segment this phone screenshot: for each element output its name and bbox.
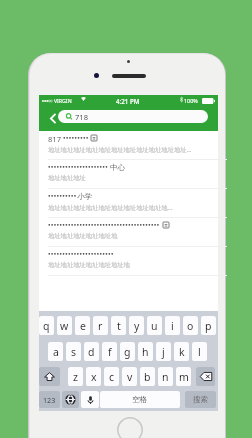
button[interactable]: a xyxy=(48,342,63,361)
staticText: p xyxy=(205,319,212,333)
button[interactable]: f xyxy=(102,342,117,361)
staticText: 地址地址地址地址地址地址地址地址地址地… xyxy=(48,203,173,212)
staticText: l xyxy=(198,345,201,359)
button[interactable]: l xyxy=(192,342,207,361)
button[interactable]: b xyxy=(140,367,155,386)
button[interactable]: z xyxy=(68,367,83,386)
button[interactable]: e xyxy=(75,316,90,335)
button[interactable]: 中心 xyxy=(39,160,218,189)
button[interactable]: c xyxy=(104,367,119,386)
button[interactable]: i xyxy=(165,316,180,335)
staticText: 100% xyxy=(184,97,198,104)
staticText: x xyxy=(91,370,97,384)
staticText: 地址地址地址地址地址地 xyxy=(48,232,118,240)
button[interactable]: v xyxy=(122,367,137,386)
staticText: 地址地址地址地址地址地址地 xyxy=(48,261,130,269)
button[interactable]: j xyxy=(156,342,171,361)
staticText: g xyxy=(124,345,131,359)
staticText: n xyxy=(162,370,169,384)
staticText: 搜索 xyxy=(193,395,209,405)
staticText: VIRGIN xyxy=(54,97,72,104)
staticText: 地址地址地址 xyxy=(48,174,86,182)
button[interactable]: x xyxy=(86,367,101,386)
button[interactable]: 小学 xyxy=(39,189,218,218)
button[interactable]: Search xyxy=(185,391,216,408)
button[interactable]: m xyxy=(176,367,191,386)
button[interactable]: q xyxy=(39,316,54,335)
staticText: 小学 xyxy=(77,192,93,202)
staticText: m xyxy=(179,370,189,384)
staticText: b xyxy=(144,370,151,384)
staticText: e xyxy=(80,319,86,333)
staticText: 123 xyxy=(43,395,56,405)
staticText: o xyxy=(187,319,194,333)
staticText: c xyxy=(109,370,115,384)
staticText: 4:21 PM xyxy=(116,97,140,105)
staticText: q xyxy=(43,319,50,333)
staticText: f xyxy=(108,345,112,359)
button[interactable]: g xyxy=(120,342,135,361)
button[interactable]: d xyxy=(84,342,99,361)
button[interactable]: Dictate xyxy=(81,391,99,408)
button[interactable]: r xyxy=(93,316,108,335)
staticText: t xyxy=(117,319,121,333)
staticText: y xyxy=(134,319,140,333)
button[interactable]: t xyxy=(111,316,126,335)
button[interactable]: k xyxy=(174,342,189,361)
button[interactable]: y xyxy=(129,316,144,335)
button[interactable]: Switch keyboard xyxy=(62,391,79,408)
button[interactable]: u xyxy=(147,316,162,335)
staticText: d xyxy=(88,345,95,359)
staticText: r xyxy=(98,319,103,333)
button[interactable]: Numbers xyxy=(39,391,60,408)
staticText: z xyxy=(73,370,78,384)
staticText: h xyxy=(142,345,149,359)
staticText: a xyxy=(53,345,59,359)
staticText: 718 xyxy=(75,112,89,122)
staticText: s xyxy=(71,345,77,359)
button[interactable]: 718 xyxy=(58,110,208,123)
staticText: v xyxy=(127,370,133,384)
button[interactable]: 地址地址地址地址地址地 xyxy=(39,218,218,247)
button[interactable]: p xyxy=(201,316,216,335)
button[interactable]: Delete xyxy=(196,367,215,386)
staticText: 中心 xyxy=(110,163,126,173)
button[interactable]: Shift xyxy=(39,367,60,386)
button[interactable]: Back xyxy=(44,108,61,128)
button[interactable]: Space xyxy=(100,391,180,408)
staticText: 地址地址地址地址地址地址地址地址地址地址地址… xyxy=(48,145,192,154)
button[interactable]: n xyxy=(158,367,173,386)
staticText: 817 xyxy=(48,134,62,144)
button[interactable]: s xyxy=(66,342,81,361)
button[interactable]: w xyxy=(57,316,72,335)
staticText: u xyxy=(151,319,158,333)
button[interactable]: 817 xyxy=(39,131,218,160)
staticText: k xyxy=(179,345,185,359)
button[interactable]: h xyxy=(138,342,153,361)
staticText: j xyxy=(162,345,165,359)
button[interactable]: 地址地址地址地址地址地址地 xyxy=(39,247,218,276)
staticText: 空格 xyxy=(132,395,148,405)
staticText: i xyxy=(171,319,174,333)
button[interactable]: o xyxy=(183,316,198,335)
staticText: w xyxy=(60,319,69,333)
